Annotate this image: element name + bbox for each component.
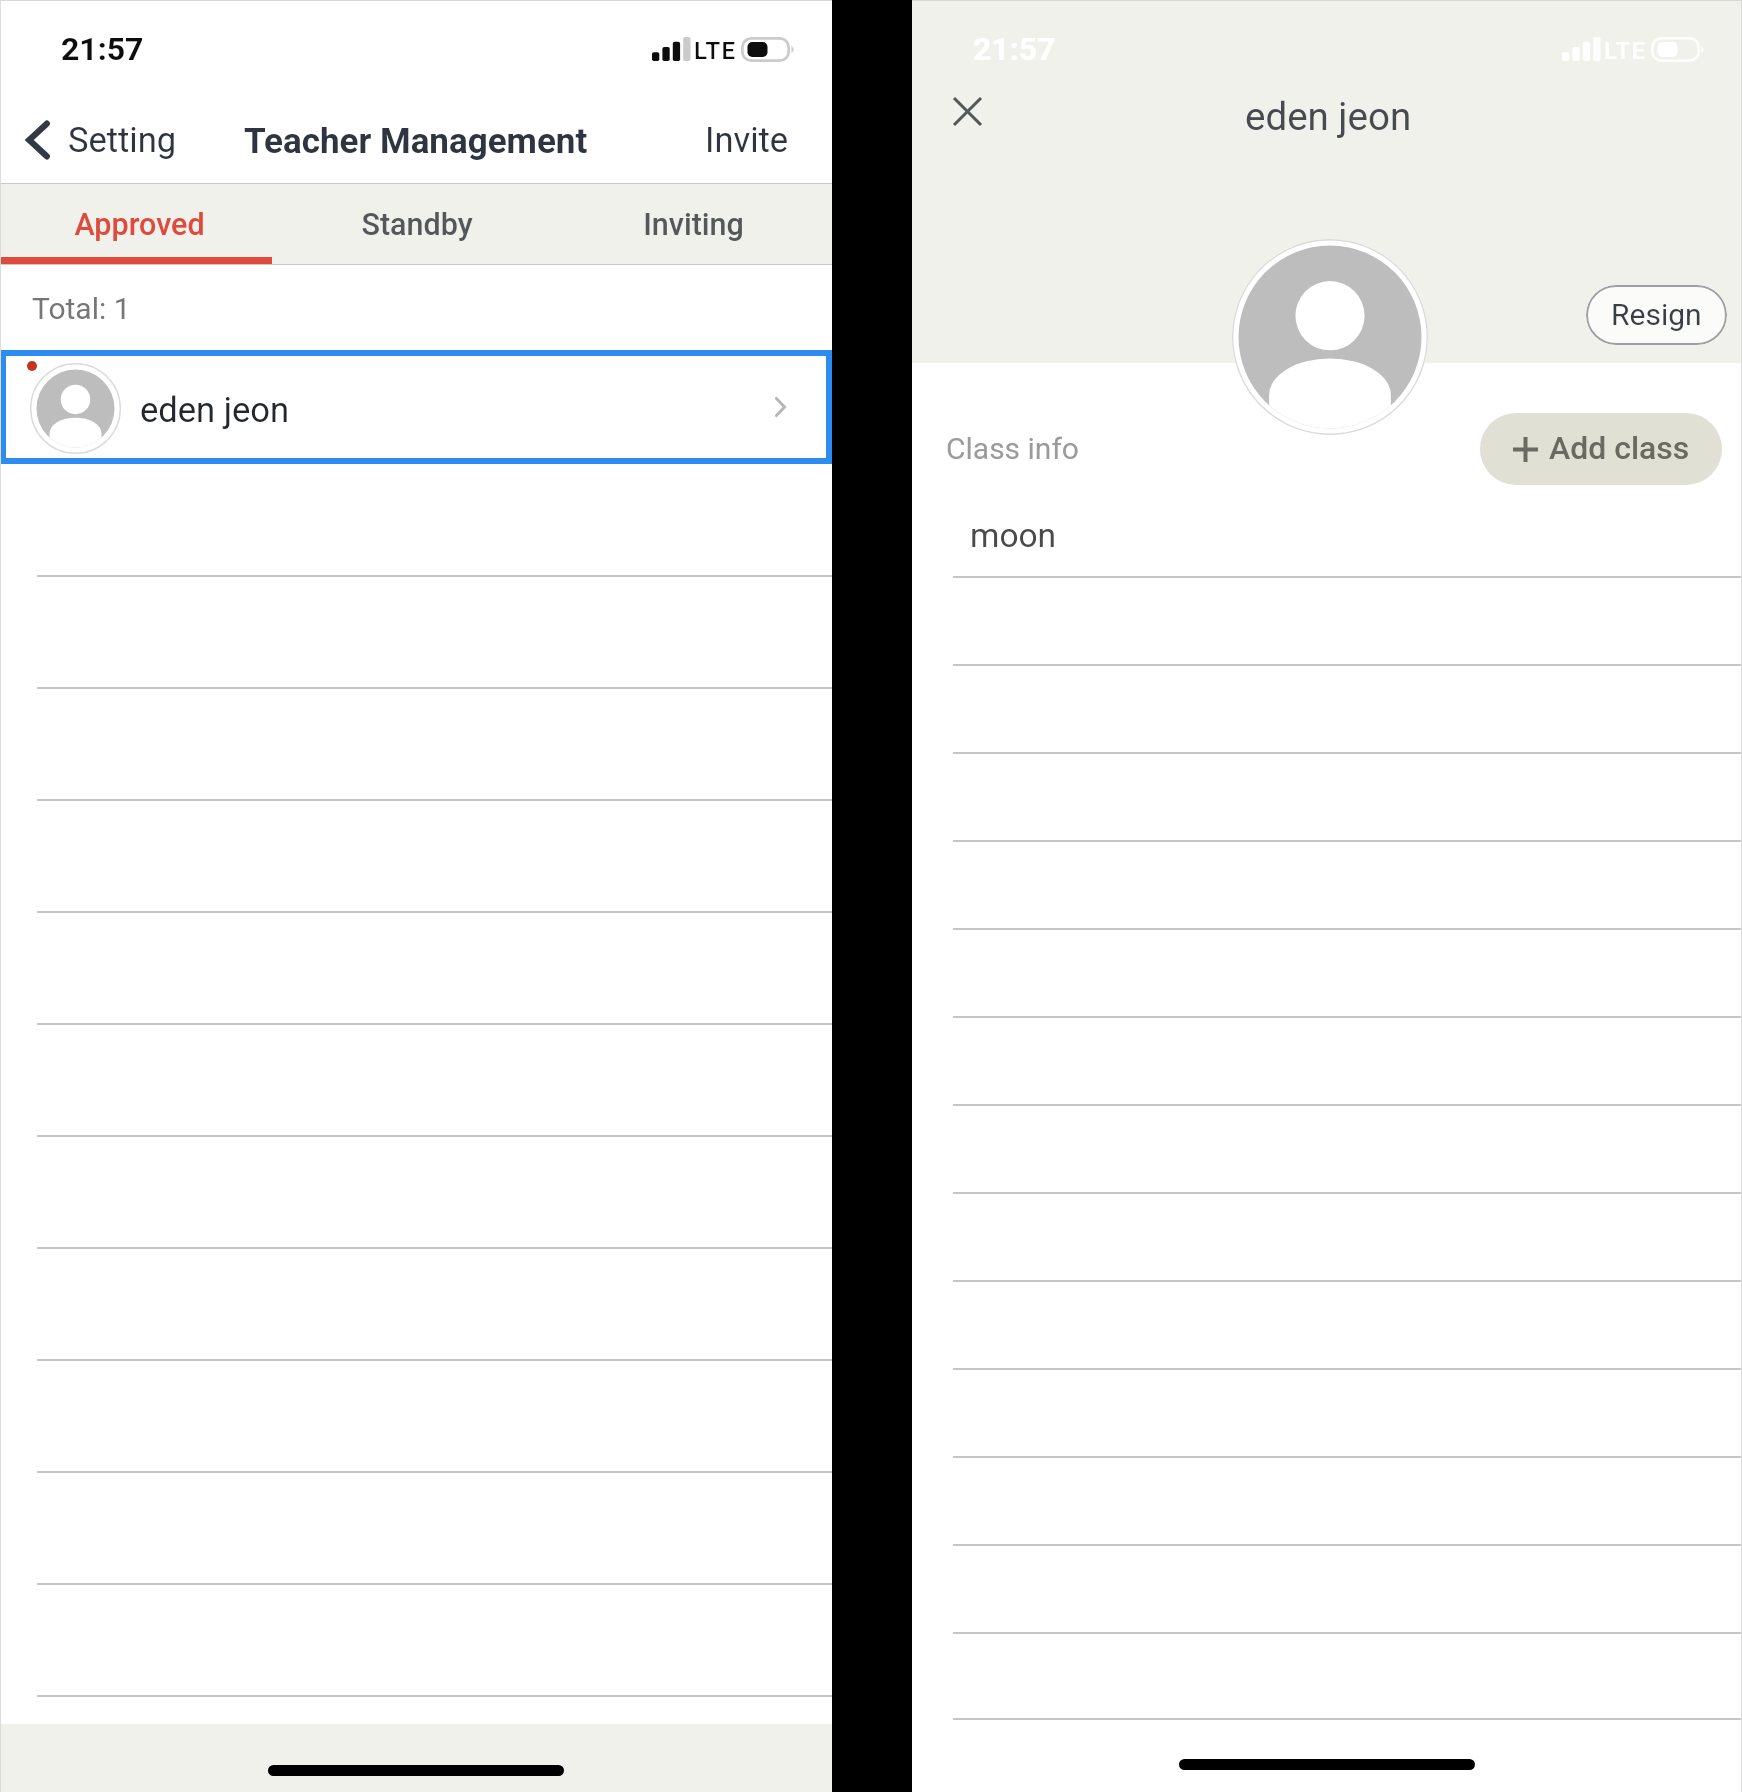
button[interactable]: Standby [278, 184, 555, 264]
button[interactable]: Inviting [555, 184, 832, 264]
staticText: Teacher Management [244, 121, 588, 162]
staticText: Resign [1611, 297, 1702, 332]
button[interactable]: Add class [1480, 413, 1722, 485]
button[interactable]: moon [912, 490, 1742, 578]
button[interactable]: Approved [0, 184, 278, 264]
button[interactable]: eden jeon [0, 350, 832, 464]
button[interactable]: Resign [1586, 285, 1727, 345]
staticText: LTE [694, 37, 737, 65]
staticText: eden jeon [1245, 94, 1412, 139]
staticText: Add class [1549, 429, 1690, 467]
staticText: eden jeon [140, 390, 289, 430]
staticText: LTE [1604, 37, 1647, 65]
staticText: Class info [946, 431, 1079, 466]
button[interactable]: Setting [0, 112, 189, 168]
staticText: Invite [705, 120, 789, 160]
staticText: 21:57 [61, 30, 144, 68]
staticText: Inviting [643, 207, 744, 243]
staticText: Setting [68, 120, 177, 160]
button[interactable]: Invite [673, 112, 832, 168]
staticText: Total: 1 [32, 291, 131, 326]
staticText: Standby [361, 207, 473, 243]
staticText: moon [970, 516, 1057, 555]
staticText: 21:57 [973, 30, 1056, 68]
button[interactable]: Close [940, 84, 995, 139]
staticText: Approved [74, 207, 205, 243]
